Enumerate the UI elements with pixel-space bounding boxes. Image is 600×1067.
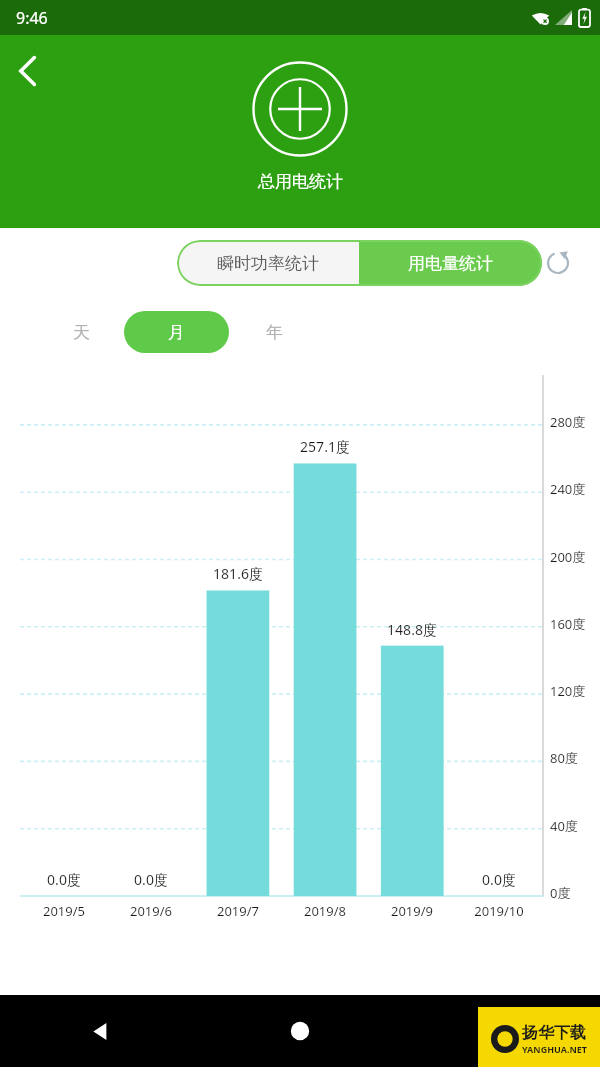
button[interactable]: Home xyxy=(200,995,400,1067)
button[interactable]: 月 xyxy=(124,311,229,353)
staticText: 240度 xyxy=(550,480,586,498)
staticText: 200度 xyxy=(550,548,586,566)
staticText: YANGHUA.NET xyxy=(522,1043,588,1055)
button[interactable]: Back xyxy=(0,995,200,1067)
staticText: 瞬时功率统计 xyxy=(217,253,319,274)
staticText: 80度 xyxy=(550,749,578,767)
button[interactable]: Back xyxy=(6,49,50,93)
button[interactable]: 用电量统计 xyxy=(359,240,542,286)
staticText: 2019/7 xyxy=(199,902,277,920)
staticText: 扬华下载 xyxy=(522,1023,586,1043)
staticText: 120度 xyxy=(550,682,586,700)
staticText: 0度 xyxy=(550,884,571,902)
staticText: 0.0度 xyxy=(25,870,103,889)
staticText: 2019/9 xyxy=(373,902,451,920)
staticText: 0.0度 xyxy=(112,870,190,889)
staticText: 年 xyxy=(266,322,283,343)
staticText: 2019/5 xyxy=(25,902,103,920)
staticText: 用电量统计 xyxy=(408,253,493,274)
staticText: 257.1度 xyxy=(286,437,364,456)
staticText: 2019/6 xyxy=(112,902,190,920)
button[interactable]: 天 xyxy=(58,309,104,355)
staticText: 月 xyxy=(168,322,185,343)
button[interactable]: Refresh xyxy=(538,243,578,283)
staticText: 天 xyxy=(73,322,90,343)
staticText: 9:46 xyxy=(16,7,48,29)
staticText: 148.8度 xyxy=(373,620,451,639)
staticText: 0.0度 xyxy=(460,870,538,889)
button[interactable]: 年 xyxy=(251,309,297,355)
staticText: 40度 xyxy=(550,817,578,835)
button[interactable]: Recent apps xyxy=(400,995,600,1067)
staticText: 181.6度 xyxy=(199,564,277,583)
staticText: 280度 xyxy=(550,413,586,431)
staticText: 2019/8 xyxy=(286,902,364,920)
staticText: 2019/10 xyxy=(460,902,538,920)
staticText: 总用电统计 xyxy=(258,171,343,192)
staticText: 160度 xyxy=(550,615,586,633)
button[interactable]: 瞬时功率统计 xyxy=(177,240,359,286)
